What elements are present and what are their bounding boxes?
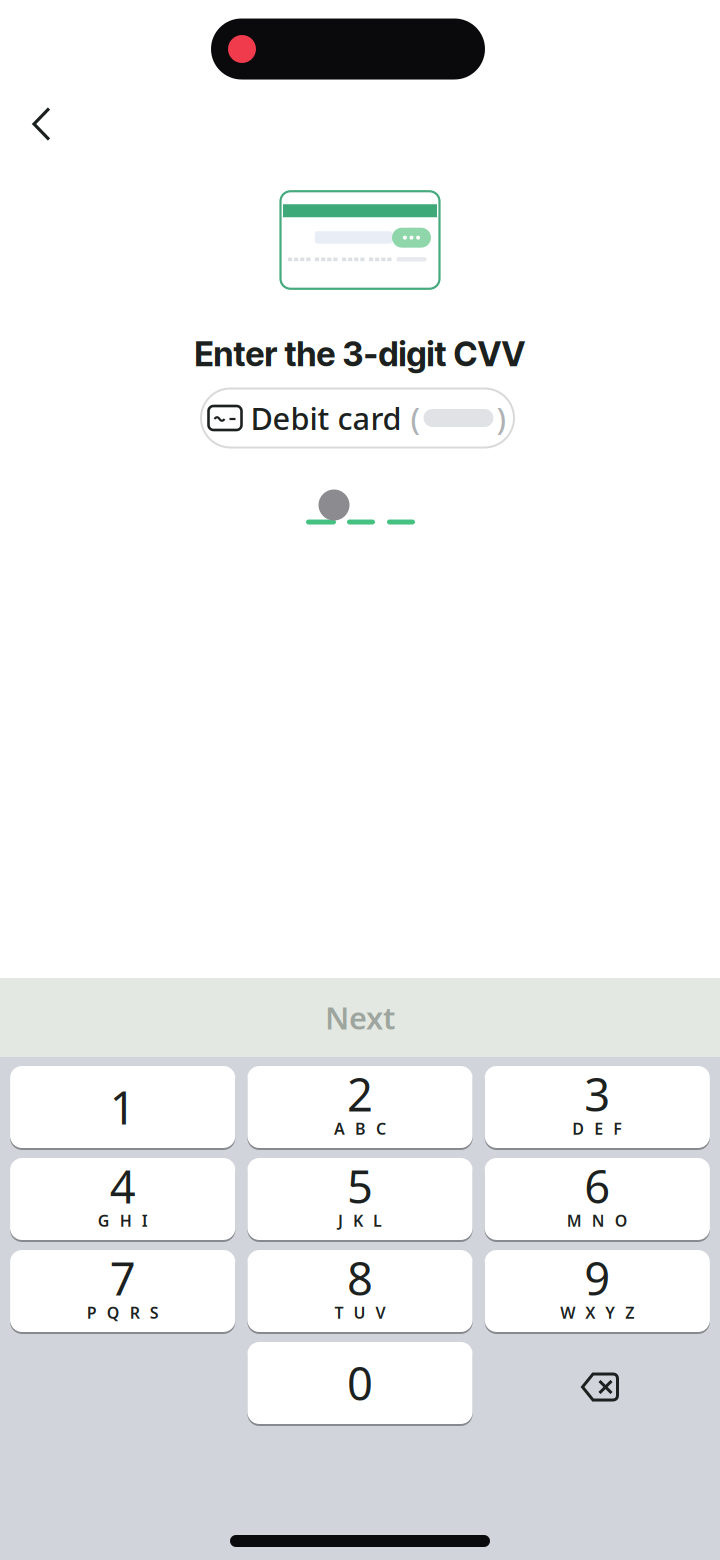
button[interactable]: Delete [540,1346,660,1428]
button[interactable]: 5 [247,1158,473,1240]
staticText: M N O [567,1210,628,1231]
button[interactable]: Back [23,104,63,144]
staticText: Debit card [250,398,401,438]
staticText: P Q R S [87,1302,159,1323]
button[interactable]: Next [0,978,720,1057]
staticText: D E F [572,1118,622,1139]
staticText: 6 [584,1156,610,1216]
staticText: 3 [584,1064,610,1124]
staticText: ) [496,398,506,438]
staticText: T U V [334,1302,385,1323]
staticText: A B C [334,1118,386,1139]
staticText: 2 [347,1064,373,1124]
button[interactable]: 7 [10,1250,235,1332]
staticText: 1 [110,1077,136,1137]
staticText: Next [325,997,395,1038]
button[interactable]: Debit card [201,388,514,447]
staticText: W X Y Z [560,1302,634,1323]
staticText: 7 [110,1248,136,1308]
button[interactable]: 2 [247,1066,473,1148]
button[interactable]: 0 [247,1342,473,1424]
staticText: 8 [347,1248,373,1308]
button[interactable]: 3 [485,1066,710,1148]
staticText: 5 [347,1156,373,1216]
staticText: G H I [98,1210,148,1231]
staticText: ( [410,398,420,438]
button[interactable]: 1 [10,1066,235,1148]
button[interactable]: 6 [485,1158,710,1240]
button[interactable]: 4 [10,1158,235,1240]
staticText: Enter the 3-digit CVV [194,334,525,374]
button[interactable]: 8 [247,1250,473,1332]
staticText: 0 [347,1353,373,1413]
staticText: 4 [110,1156,136,1216]
staticText: 9 [584,1248,610,1308]
button[interactable]: 9 [485,1250,710,1332]
staticText: J K L [338,1210,382,1231]
